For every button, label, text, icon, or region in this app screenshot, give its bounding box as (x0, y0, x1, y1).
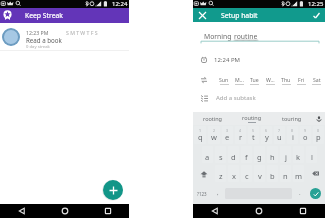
staticText: ?123 (197, 191, 207, 197)
staticText: Sat (313, 76, 321, 83)
button[interactable]: Sat (312, 76, 321, 85)
button[interactable]: 3 (222, 126, 233, 144)
staticText: 3 (226, 128, 229, 133)
staticText: 6 (265, 128, 268, 133)
button[interactable]: 8 (287, 126, 298, 144)
button[interactable]: g (254, 146, 265, 163)
staticText: 1 (199, 128, 202, 133)
button[interactable]: z (215, 165, 226, 182)
button[interactable]: Voice input (312, 112, 325, 125)
staticText: n (283, 171, 288, 181)
button[interactable]: l (306, 146, 317, 163)
button[interactable]: Thu (281, 76, 291, 85)
staticText: z (219, 171, 223, 181)
staticText: Sun (219, 76, 229, 83)
button[interactable]: Back (193, 204, 237, 218)
button[interactable]: 6 (261, 126, 272, 144)
button[interactable]: Sun (219, 76, 229, 85)
button[interactable]: c (241, 165, 252, 182)
staticText: u (277, 132, 282, 142)
staticText: 12:24 PM (214, 56, 240, 64)
button[interactable]: k (293, 146, 304, 163)
staticText: i (292, 132, 294, 142)
button[interactable]: 4 (235, 126, 246, 144)
button[interactable]: 9 (300, 126, 311, 144)
staticText: M... (235, 76, 244, 83)
button[interactable]: a (202, 146, 213, 163)
button[interactable]: Tue (250, 76, 259, 85)
button[interactable]: 1 (194, 126, 206, 144)
staticText: rooting (203, 115, 223, 122)
staticText: h (270, 152, 275, 162)
button[interactable]: 5 (248, 126, 259, 144)
button[interactable]: Backspace (305, 164, 325, 183)
button[interactable]: Add habit (103, 180, 123, 200)
button[interactable]: Back (0, 204, 43, 218)
staticText: f (245, 152, 248, 162)
staticText: t (252, 132, 255, 142)
button[interactable]: 7 (274, 126, 285, 144)
button[interactable]: m (293, 165, 304, 182)
staticText: k (296, 152, 301, 162)
button[interactable]: Home (43, 204, 86, 218)
button[interactable]: Fri (297, 76, 306, 85)
button[interactable]: 12:23 PM (0, 23, 129, 51)
staticText: W... (266, 76, 275, 83)
button[interactable]: M... (235, 76, 244, 85)
staticText: Morning (204, 32, 234, 41)
button[interactable]: W... (266, 76, 275, 85)
button[interactable]: Recent apps (281, 204, 325, 218)
button[interactable]: , (211, 183, 224, 204)
staticText: 12:24 (112, 0, 128, 8)
button[interactable]: s (215, 146, 226, 163)
staticText: touring (282, 115, 302, 122)
staticText: p (316, 132, 321, 142)
button[interactable]: Enter (306, 183, 325, 204)
staticText: g (257, 152, 262, 162)
staticText: m (295, 171, 303, 181)
staticText: w (211, 132, 217, 142)
button[interactable]: Add a subtask (193, 90, 325, 106)
staticText: SMTWTFS (66, 29, 99, 36)
staticText: e (225, 132, 230, 142)
staticText: o (303, 132, 308, 142)
button[interactable]: Save (311, 10, 322, 21)
button[interactable]: Home (237, 204, 281, 218)
button[interactable]: j (280, 146, 291, 163)
button[interactable]: Close (197, 10, 208, 21)
staticText: y (265, 132, 269, 142)
button[interactable]: b (267, 165, 278, 182)
button[interactable]: 12:24 PM (193, 52, 325, 68)
staticText: b (270, 171, 275, 181)
button[interactable]: Recent apps (86, 204, 129, 218)
staticText: 9 (304, 128, 307, 133)
button[interactable]: v (254, 165, 265, 182)
staticText: l (311, 152, 313, 162)
staticText: v (258, 171, 262, 181)
staticText: Read a book (26, 36, 62, 44)
staticText: j (285, 152, 287, 162)
button[interactable]: x (228, 165, 239, 182)
staticText: Keep Streak (25, 11, 63, 20)
staticText: d (231, 152, 236, 162)
staticText: routing (242, 114, 262, 121)
button[interactable]: h (267, 146, 278, 163)
button[interactable]: Shift (193, 164, 214, 183)
button[interactable]: rooting (193, 112, 232, 125)
button[interactable]: 2 (208, 126, 220, 144)
button[interactable]: n (280, 165, 291, 182)
button[interactable]: 0 (313, 126, 324, 144)
button[interactable]: touring (272, 112, 312, 125)
button[interactable]: ?123 (193, 183, 211, 204)
staticText: c (245, 171, 249, 181)
staticText: q (198, 132, 203, 142)
staticText: 2 (213, 128, 216, 133)
button[interactable]: routing (232, 112, 272, 125)
button[interactable]: d (228, 146, 239, 163)
staticText: 12:23 PM (26, 29, 49, 36)
button[interactable]: f (241, 146, 252, 163)
button[interactable]: Keep Streak (3, 11, 12, 20)
staticText: 5 (252, 128, 255, 133)
